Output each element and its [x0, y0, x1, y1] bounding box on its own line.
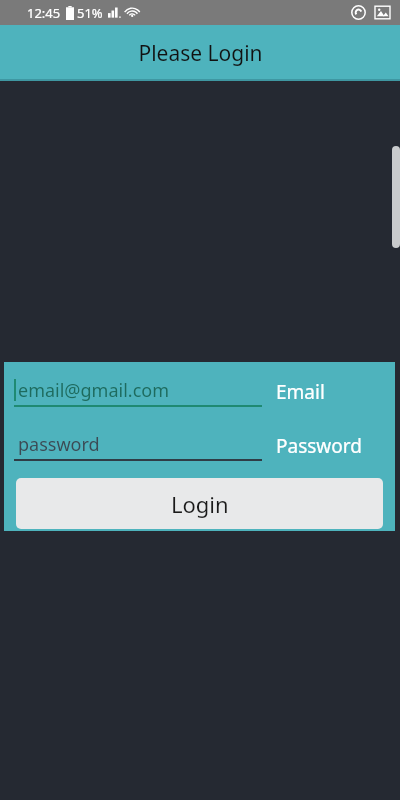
staticText: 12:45 [27, 4, 61, 22]
staticText: password [18, 432, 100, 457]
button[interactable]: email@gmail.com [14, 372, 262, 412]
other: WhatsApp notification [351, 5, 366, 20]
staticText: Password [276, 433, 362, 459]
staticText: Please Login [138, 39, 263, 68]
staticText: 51% [77, 4, 103, 22]
button[interactable]: Login [16, 478, 383, 529]
button[interactable]: password [14, 426, 262, 466]
staticText: Login [171, 489, 229, 519]
staticText: email@gmail.com [18, 378, 170, 403]
other: Screenshot [375, 5, 390, 20]
staticText: Email [276, 379, 325, 405]
